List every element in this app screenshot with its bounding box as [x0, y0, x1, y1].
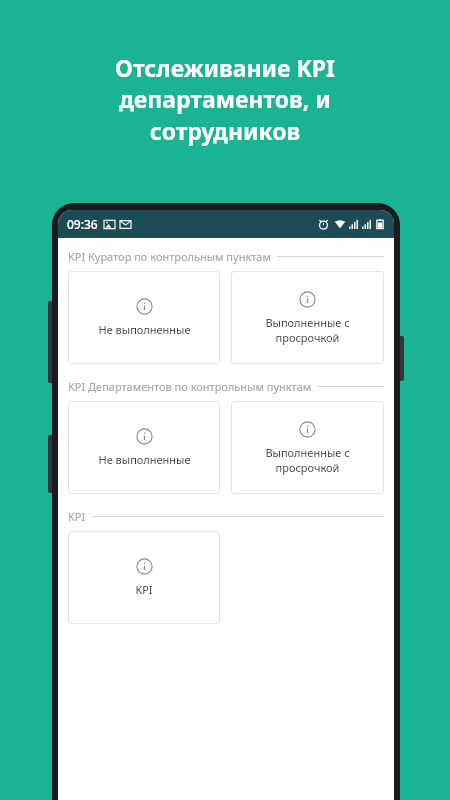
- button[interactable]: Не выполненные: [68, 401, 220, 494]
- staticText: KPI: [135, 582, 153, 597]
- button[interactable]: KPI: [68, 531, 220, 624]
- staticText: Не выполненные: [98, 452, 191, 467]
- staticText: KPI Департаментов по контрольным пунктам: [68, 379, 312, 394]
- staticText: 09:36: [67, 216, 98, 232]
- button[interactable]: Не выполненные: [68, 271, 220, 364]
- staticText: Выполненные с просрочкой: [265, 315, 350, 345]
- button[interactable]: Выполненные с просрочкой: [231, 271, 384, 364]
- staticText: KPI: [68, 509, 86, 524]
- staticText: Выполненные с просрочкой: [265, 445, 350, 475]
- button[interactable]: Выполненные с просрочкой: [231, 401, 384, 494]
- staticText: KPI Куратор по контрольным пунктам: [68, 249, 271, 264]
- staticText: Не выполненные: [98, 322, 191, 337]
- staticText: Отслеживание KPI департаментов, и сотруд…: [115, 52, 335, 147]
